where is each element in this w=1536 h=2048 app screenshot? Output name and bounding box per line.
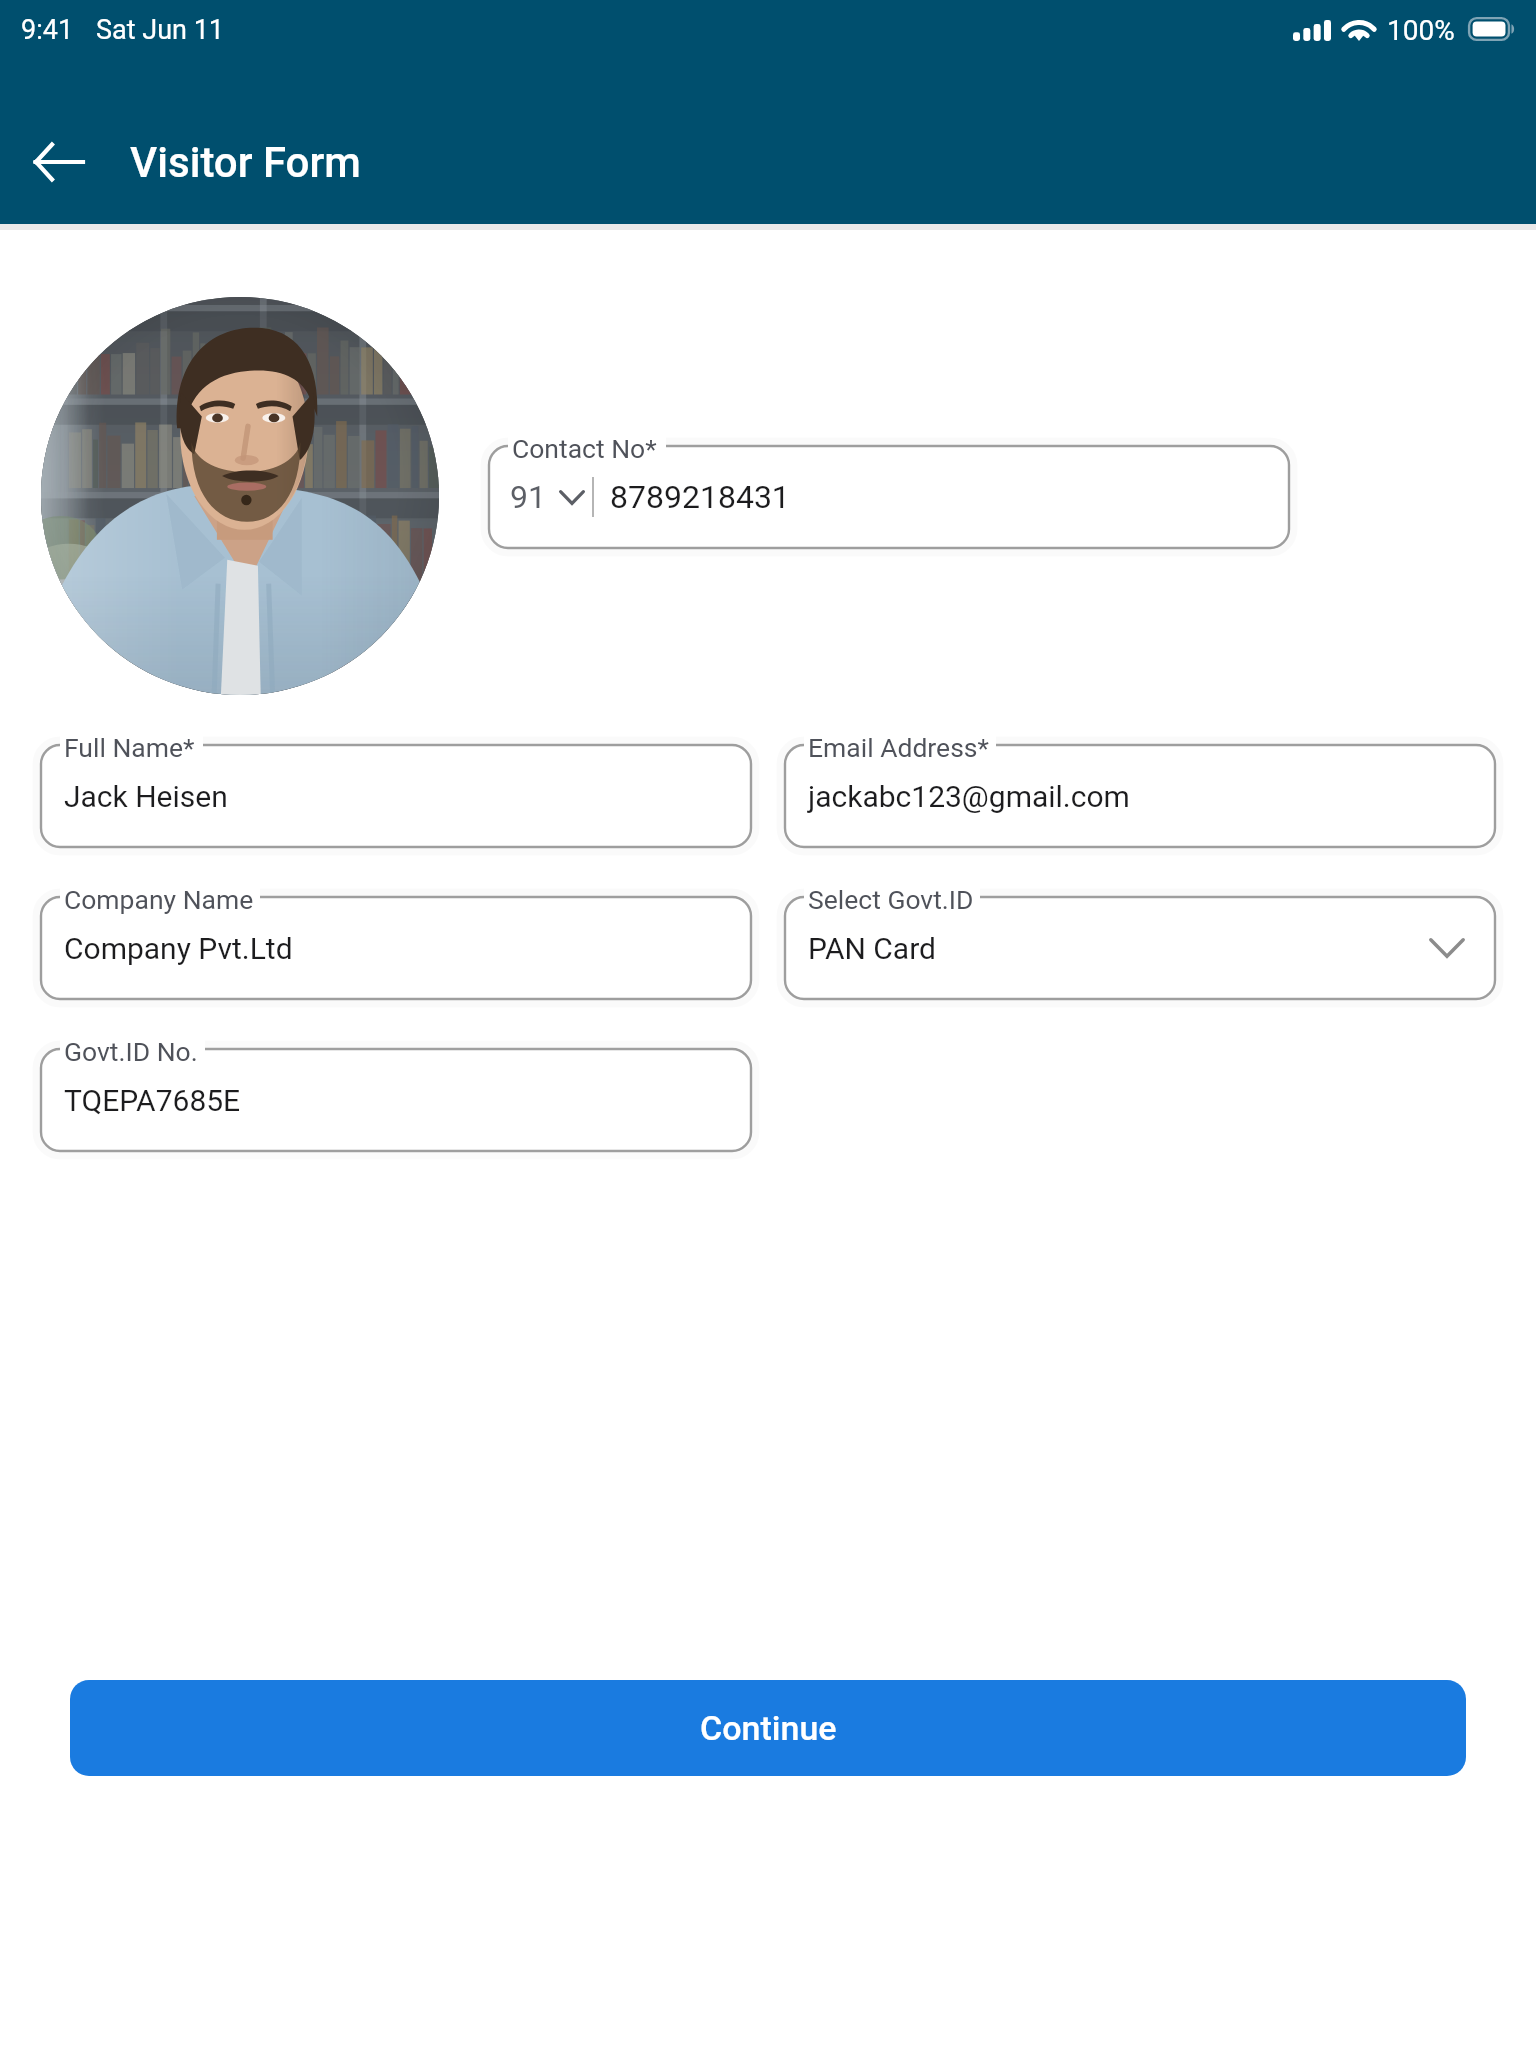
staticText: Email Address* [808,732,989,763]
button[interactable]: Continue [70,1680,1466,1776]
button[interactable]: 91 [489,446,1289,548]
staticText: Contact No* [512,433,657,464]
staticText: 91 [510,478,546,516]
staticText: Select Govt.ID [808,884,974,915]
staticText: Govt.ID No. [64,1036,198,1067]
staticText: Jack Heisen [64,779,228,814]
button[interactable]: 91 [489,446,592,548]
staticText: 100% [1387,14,1455,47]
staticText: Continue [700,1708,837,1748]
button[interactable]: Visitor photo [41,297,439,695]
button[interactable]: TQEPA7685E [41,1049,751,1151]
staticText: Sat Jun 11 [96,14,224,46]
staticText: Company Name [64,884,254,915]
staticText: jackabc123@gmail.com [808,779,1130,814]
staticText: PAN Card [808,931,936,966]
staticText: Company Pvt.Ltd [64,931,293,966]
staticText: Visitor Form [130,138,361,187]
button[interactable]: PAN Card [785,897,1495,999]
staticText: TQEPA7685E [64,1083,241,1118]
button[interactable]: Jack Heisen [41,745,751,847]
staticText: 8789218431 [610,478,790,516]
button[interactable]: Company Pvt.Ltd [41,897,751,999]
button[interactable]: Back [14,117,104,207]
staticText: Full Name* [64,732,195,763]
button[interactable]: jackabc123@gmail.com [785,745,1495,847]
staticText: 9:41 [21,14,74,46]
